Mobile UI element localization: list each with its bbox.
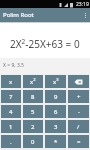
- staticText: .: [10, 138, 12, 146]
- button[interactable]: *: [45, 135, 66, 148]
- button[interactable]: 7: [1, 90, 21, 103]
- button[interactable]: 8: [23, 90, 43, 103]
- button[interactable]: 5: [23, 105, 43, 118]
- button[interactable]: +: [68, 90, 89, 103]
- button[interactable]: 3: [45, 120, 66, 133]
- staticText: 3: [54, 123, 58, 131]
- button[interactable]: 4: [1, 105, 21, 118]
- button[interactable]: =: [68, 135, 89, 148]
- button[interactable]: 9: [45, 90, 66, 103]
- staticText: 1: [9, 123, 13, 131]
- staticText: Polim Root: [3, 11, 34, 19]
- button[interactable]: -: [68, 105, 89, 118]
- staticText: 2X2-25X+63 = 0: [10, 37, 80, 51]
- button[interactable]: x3: [45, 75, 66, 88]
- button[interactable]: Polim Root: [0, 8, 90, 22]
- staticText: /: [77, 123, 80, 131]
- staticText: 5: [31, 108, 35, 116]
- staticText: 4: [9, 108, 13, 116]
- staticText: *: [54, 138, 58, 146]
- button[interactable]: 6: [45, 105, 66, 118]
- staticText: 8: [31, 93, 35, 101]
- button[interactable]: 1: [1, 120, 21, 133]
- staticText: 9: [54, 93, 58, 101]
- staticText: 2: [31, 123, 35, 131]
- staticText: x2: [30, 77, 36, 86]
- staticText: 7: [9, 93, 13, 101]
- staticText: 0: [31, 138, 35, 146]
- button[interactable]: [68, 75, 89, 88]
- staticText: +: [77, 93, 81, 101]
- staticText: =: [77, 138, 81, 146]
- staticText: 6: [54, 108, 58, 116]
- button[interactable]: 0: [23, 135, 43, 148]
- button[interactable]: /: [68, 120, 89, 133]
- staticText: X = 9, 3.5: [3, 62, 24, 69]
- button[interactable]: .: [1, 135, 21, 148]
- button[interactable]: [85, 13, 86, 18]
- staticText: -: [78, 108, 80, 116]
- button[interactable]: x: [1, 75, 21, 88]
- button[interactable]: x2: [23, 75, 43, 88]
- staticText: x: [9, 78, 13, 86]
- button[interactable]: 2: [23, 120, 43, 133]
- staticText: x3: [53, 77, 59, 86]
- staticText: 23:19: [76, 1, 89, 8]
